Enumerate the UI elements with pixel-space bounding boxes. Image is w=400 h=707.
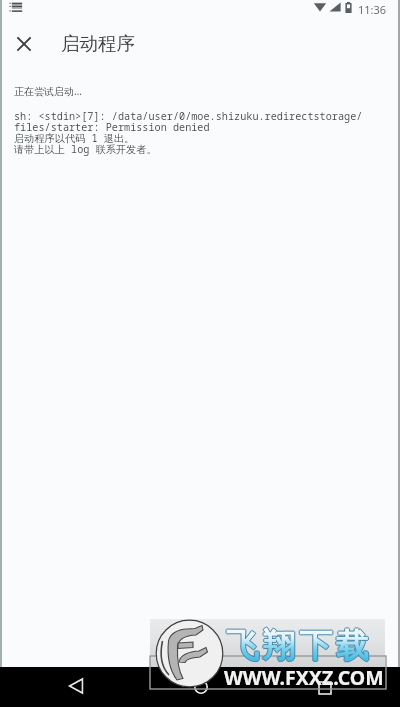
button[interactable]: Close: [4, 24, 44, 64]
staticText: 11:36: [358, 2, 387, 17]
staticText: 飞翔下载: [226, 624, 373, 666]
button[interactable]: Home: [180, 667, 221, 707]
staticText: 启动程序: [61, 32, 135, 55]
staticText: 飞翔下载: [226, 626, 373, 668]
staticText: 正在尝试启动…: [14, 84, 82, 98]
staticText: sh: <stdin>[7]: /data/user/0/moe.shizuku…: [14, 112, 363, 156]
staticText: 飞翔下载: [226, 625, 373, 667]
staticText: WWW.FXXZ.COM: [224, 664, 384, 691]
staticText: 飞翔下载: [227, 625, 374, 667]
button[interactable]: Recents: [304, 667, 345, 707]
staticText: 飞翔下载: [225, 625, 372, 667]
button[interactable]: Back: [55, 667, 96, 707]
